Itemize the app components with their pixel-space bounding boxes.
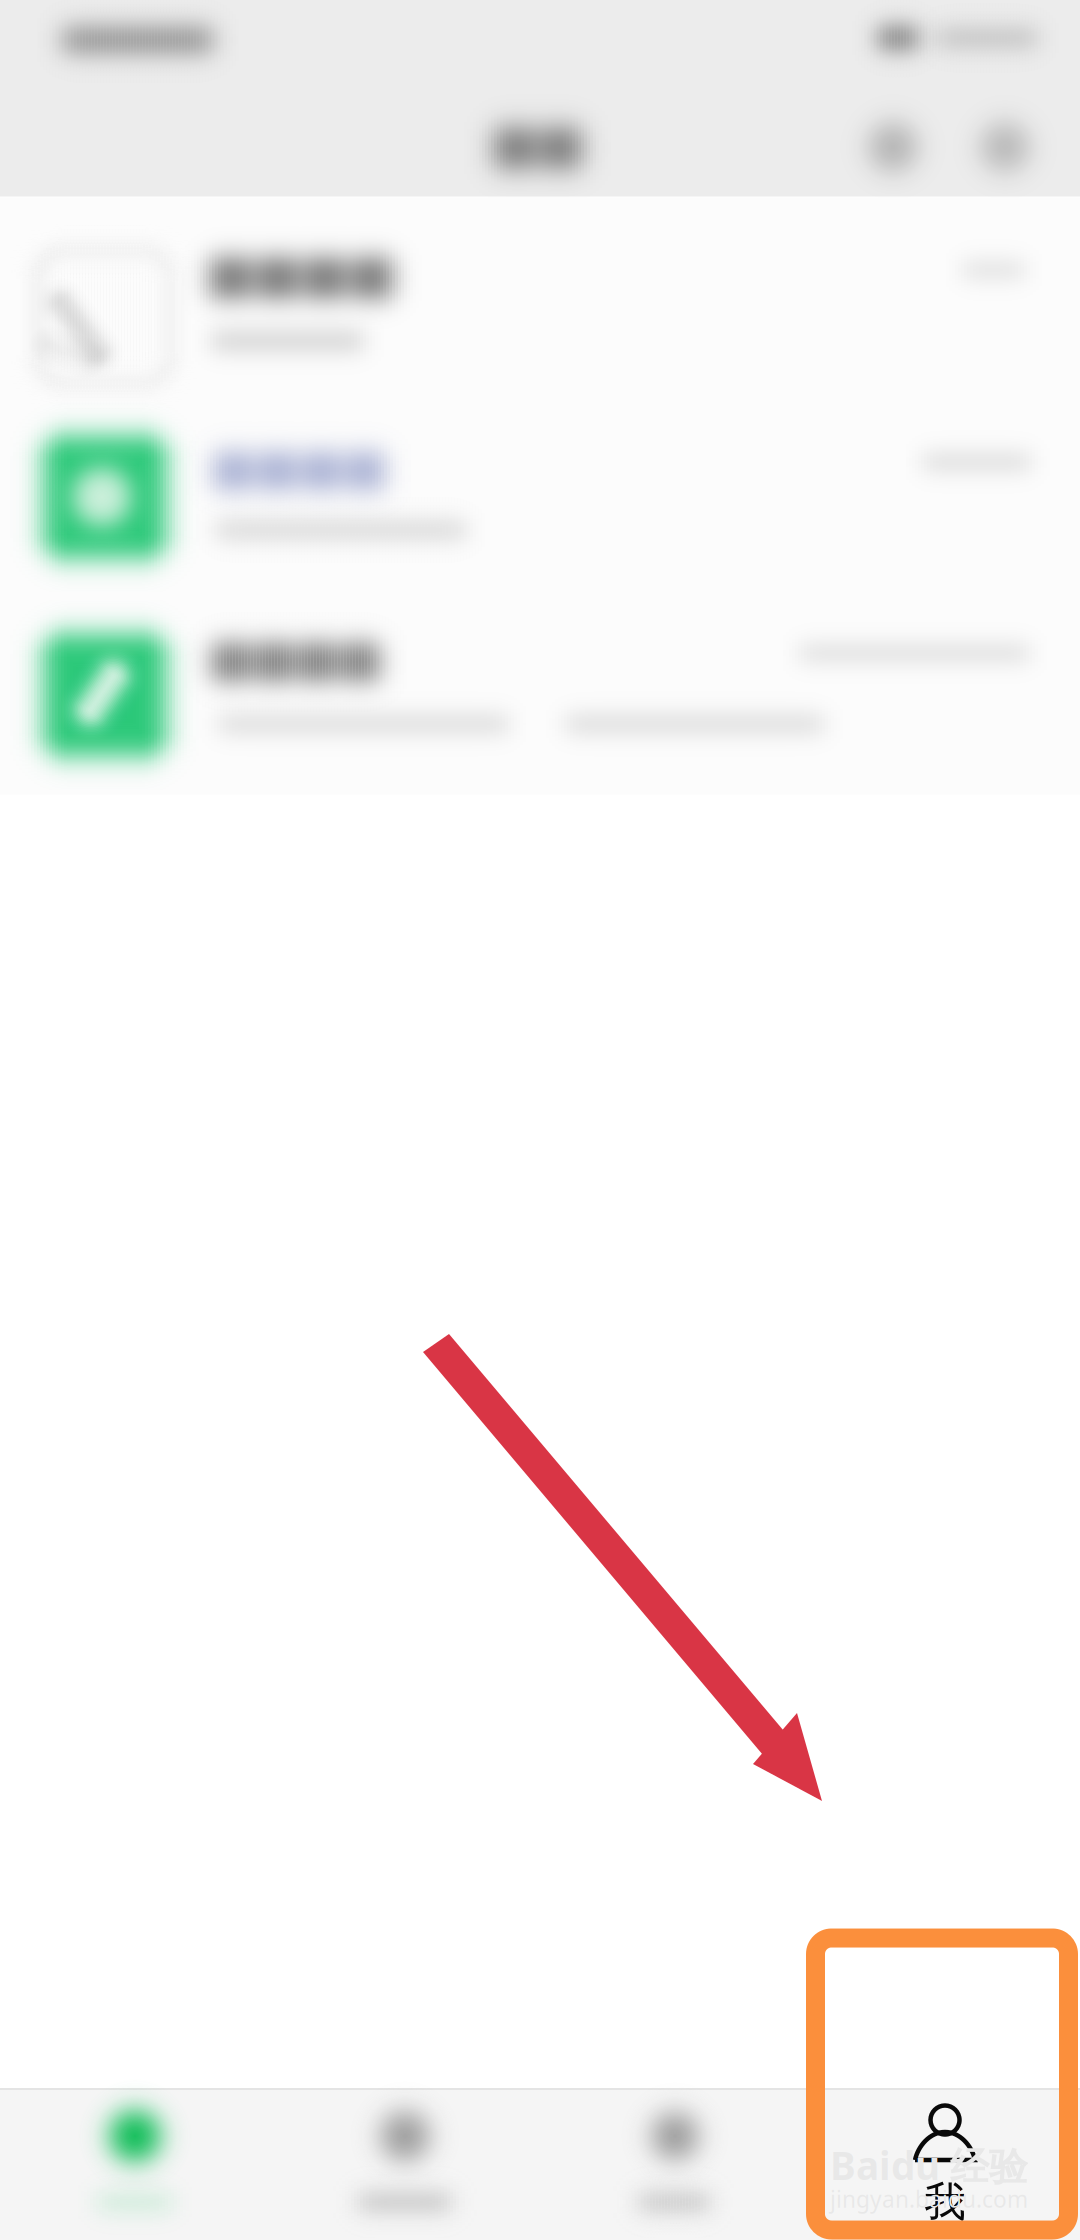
button[interactable]: 发现 bbox=[540, 2090, 810, 2240]
button[interactable]: 我 bbox=[810, 2090, 1080, 2240]
button[interactable]: 微信 bbox=[0, 2090, 270, 2240]
staticText: Baidu 经验 bbox=[830, 2139, 1028, 2191]
staticText: jingyan.baidu.com bbox=[830, 2184, 1028, 2214]
button[interactable]: 通讯录 bbox=[270, 2090, 540, 2240]
button[interactable] bbox=[0, 398, 1080, 596]
button[interactable] bbox=[0, 200, 1080, 398]
staticText: 我 bbox=[924, 2177, 965, 2227]
button[interactable] bbox=[0, 596, 1080, 794]
